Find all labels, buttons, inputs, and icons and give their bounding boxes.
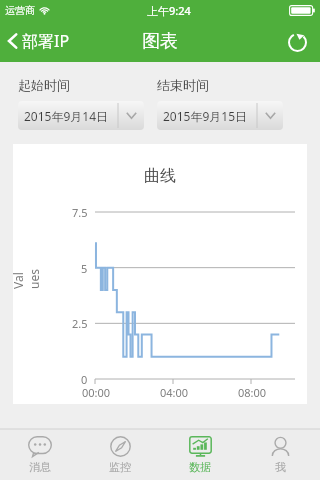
staticText: 监控 <box>109 460 131 474</box>
staticText: Values <box>10 267 42 289</box>
button[interactable]: 2015年9月14日 <box>18 101 144 130</box>
staticText: 00:00 <box>82 385 111 400</box>
staticText: 部署IP <box>22 30 70 52</box>
staticText: 数据 <box>189 460 211 474</box>
button[interactable]: 部署IP <box>0 25 80 57</box>
staticText: 消息 <box>29 460 51 474</box>
staticText: 曲线 <box>144 166 176 186</box>
staticText: 起始时间 <box>18 77 70 93</box>
staticText: 2015年9月15日 <box>163 108 248 124</box>
staticText: 5 <box>81 261 88 276</box>
button[interactable]: 监控 <box>80 430 160 480</box>
staticText: 运营商 <box>5 4 35 17</box>
staticText: 2015年9月14日 <box>24 108 109 124</box>
button[interactable]: Refresh <box>279 23 315 59</box>
button[interactable]: 我 <box>240 430 320 480</box>
staticText: 04:00 <box>160 385 189 400</box>
staticText: 7.5 <box>72 205 88 220</box>
button[interactable]: 消息 <box>0 430 80 480</box>
staticText: 结束时间 <box>157 77 209 93</box>
button[interactable]: 数据 <box>160 430 240 480</box>
staticText: 2.5 <box>72 316 88 331</box>
staticText: 08:00 <box>238 385 267 400</box>
staticText: 我 <box>275 460 286 474</box>
button[interactable]: 2015年9月15日 <box>157 101 283 130</box>
staticText: 图表 <box>142 30 178 53</box>
staticText: 上午9:24 <box>147 3 191 18</box>
staticText: 0 <box>81 372 88 387</box>
